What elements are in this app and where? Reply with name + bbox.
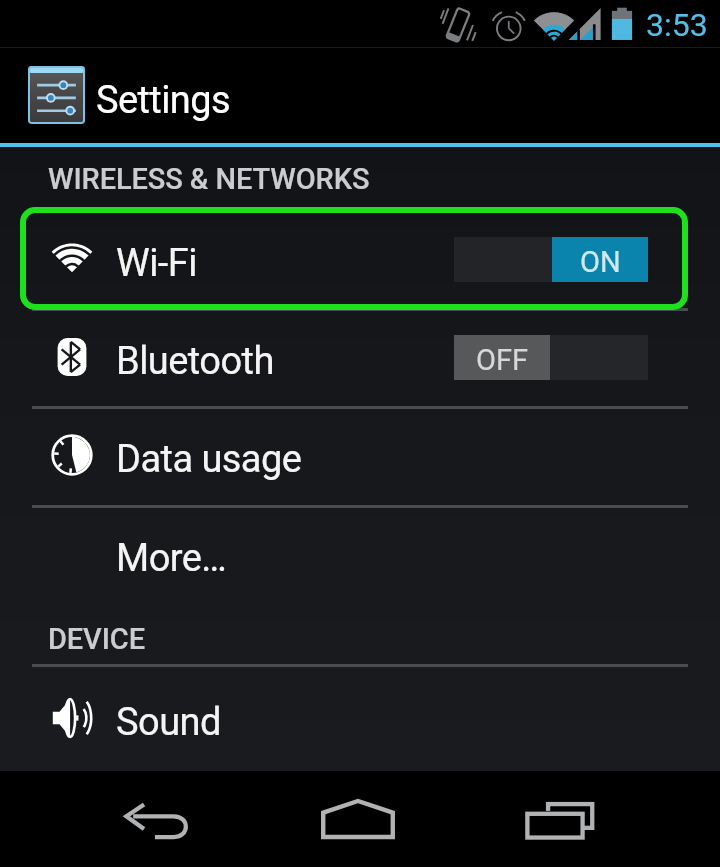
staticText: Wi-Fi: [116, 241, 197, 286]
button[interactable]: Wi-Fi toggle: [454, 237, 648, 282]
staticText: ON: [580, 245, 621, 279]
staticText: OFF: [476, 343, 529, 377]
staticText: 3:53: [646, 6, 708, 44]
button[interactable]: Wi-Fi: [0, 210, 720, 308]
staticText: Sound: [116, 700, 221, 745]
staticText: Data usage: [116, 437, 302, 482]
button[interactable]: Home: [286, 771, 434, 867]
button[interactable]: More…: [0, 505, 720, 603]
button[interactable]: Data usage: [0, 406, 720, 504]
staticText: Settings: [96, 78, 230, 123]
staticText: More…: [116, 536, 227, 581]
staticText: WIRELESS & NETWORKS: [48, 162, 370, 196]
button[interactable]: Recent apps: [486, 771, 634, 867]
button[interactable]: Bluetooth toggle: [454, 335, 648, 380]
staticText: DEVICE: [48, 622, 145, 656]
button[interactable]: Sound: [0, 669, 720, 767]
button[interactable]: Settings app icon: [28, 66, 85, 124]
button[interactable]: Bluetooth: [0, 308, 720, 406]
button[interactable]: Back: [85, 771, 233, 867]
staticText: Bluetooth: [116, 339, 274, 384]
